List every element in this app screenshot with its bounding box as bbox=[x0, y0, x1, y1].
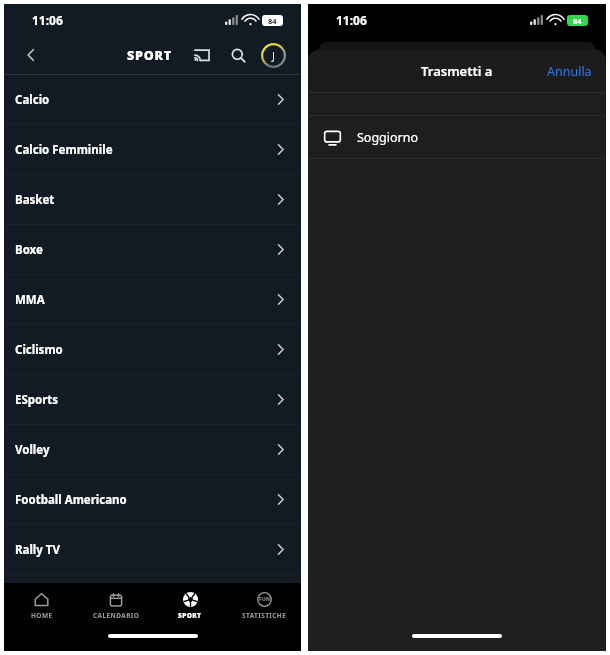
staticText: FUN bbox=[259, 596, 271, 603]
staticText: CALENDARIO bbox=[93, 611, 140, 620]
button[interactable]: Search bbox=[225, 42, 251, 68]
button[interactable]: Calcio Femminile bbox=[4, 125, 301, 174]
button[interactable]: Profile bbox=[260, 42, 287, 69]
staticText: Soggiorno bbox=[357, 129, 419, 146]
staticText: Annulla bbox=[547, 63, 592, 80]
button[interactable]: Back bbox=[18, 42, 44, 68]
staticText: MMA bbox=[15, 292, 45, 308]
button[interactable]: Cast bbox=[189, 42, 215, 68]
staticText: Calcio Femminile bbox=[15, 142, 113, 158]
button[interactable]: SPORT bbox=[153, 583, 227, 629]
button[interactable]: Boxe bbox=[4, 225, 301, 274]
button[interactable]: Ciclismo bbox=[4, 325, 301, 374]
button[interactable]: Calcio bbox=[4, 75, 301, 124]
button[interactable]: MMA bbox=[4, 275, 301, 324]
button[interactable]: Volley bbox=[4, 425, 301, 474]
button[interactable]: Soggiorno bbox=[308, 116, 606, 158]
staticText: 84 bbox=[573, 16, 582, 26]
staticText: Volley bbox=[15, 442, 50, 458]
staticText: Basket bbox=[15, 192, 55, 208]
staticText: Rally TV bbox=[15, 542, 60, 558]
staticText: SPORT bbox=[178, 611, 202, 620]
staticText: J bbox=[272, 48, 276, 63]
staticText: SPORT bbox=[127, 47, 172, 64]
button[interactable]: Football Americano bbox=[4, 475, 301, 524]
staticText: HOME bbox=[31, 611, 53, 620]
staticText: Boxe bbox=[15, 242, 43, 258]
button[interactable]: Basket bbox=[4, 175, 301, 224]
button[interactable]: Rally TV bbox=[4, 525, 301, 574]
staticText: 84 bbox=[268, 16, 277, 26]
button[interactable]: HOME bbox=[4, 583, 79, 629]
staticText: STATISTICHE bbox=[242, 611, 287, 620]
staticText: Calcio bbox=[15, 92, 50, 108]
button[interactable]: Annulla bbox=[543, 59, 596, 84]
staticText: 11:06 bbox=[336, 12, 367, 28]
staticText: 11:06 bbox=[32, 12, 63, 28]
staticText: Ciclismo bbox=[15, 342, 63, 358]
staticText: Trasmetti a bbox=[421, 62, 493, 80]
staticText: ESports bbox=[15, 392, 59, 408]
button[interactable]: ESports bbox=[4, 375, 301, 424]
button[interactable]: FUN bbox=[227, 583, 301, 629]
staticText: Football Americano bbox=[15, 492, 127, 508]
button[interactable]: CALENDARIO bbox=[79, 583, 153, 629]
